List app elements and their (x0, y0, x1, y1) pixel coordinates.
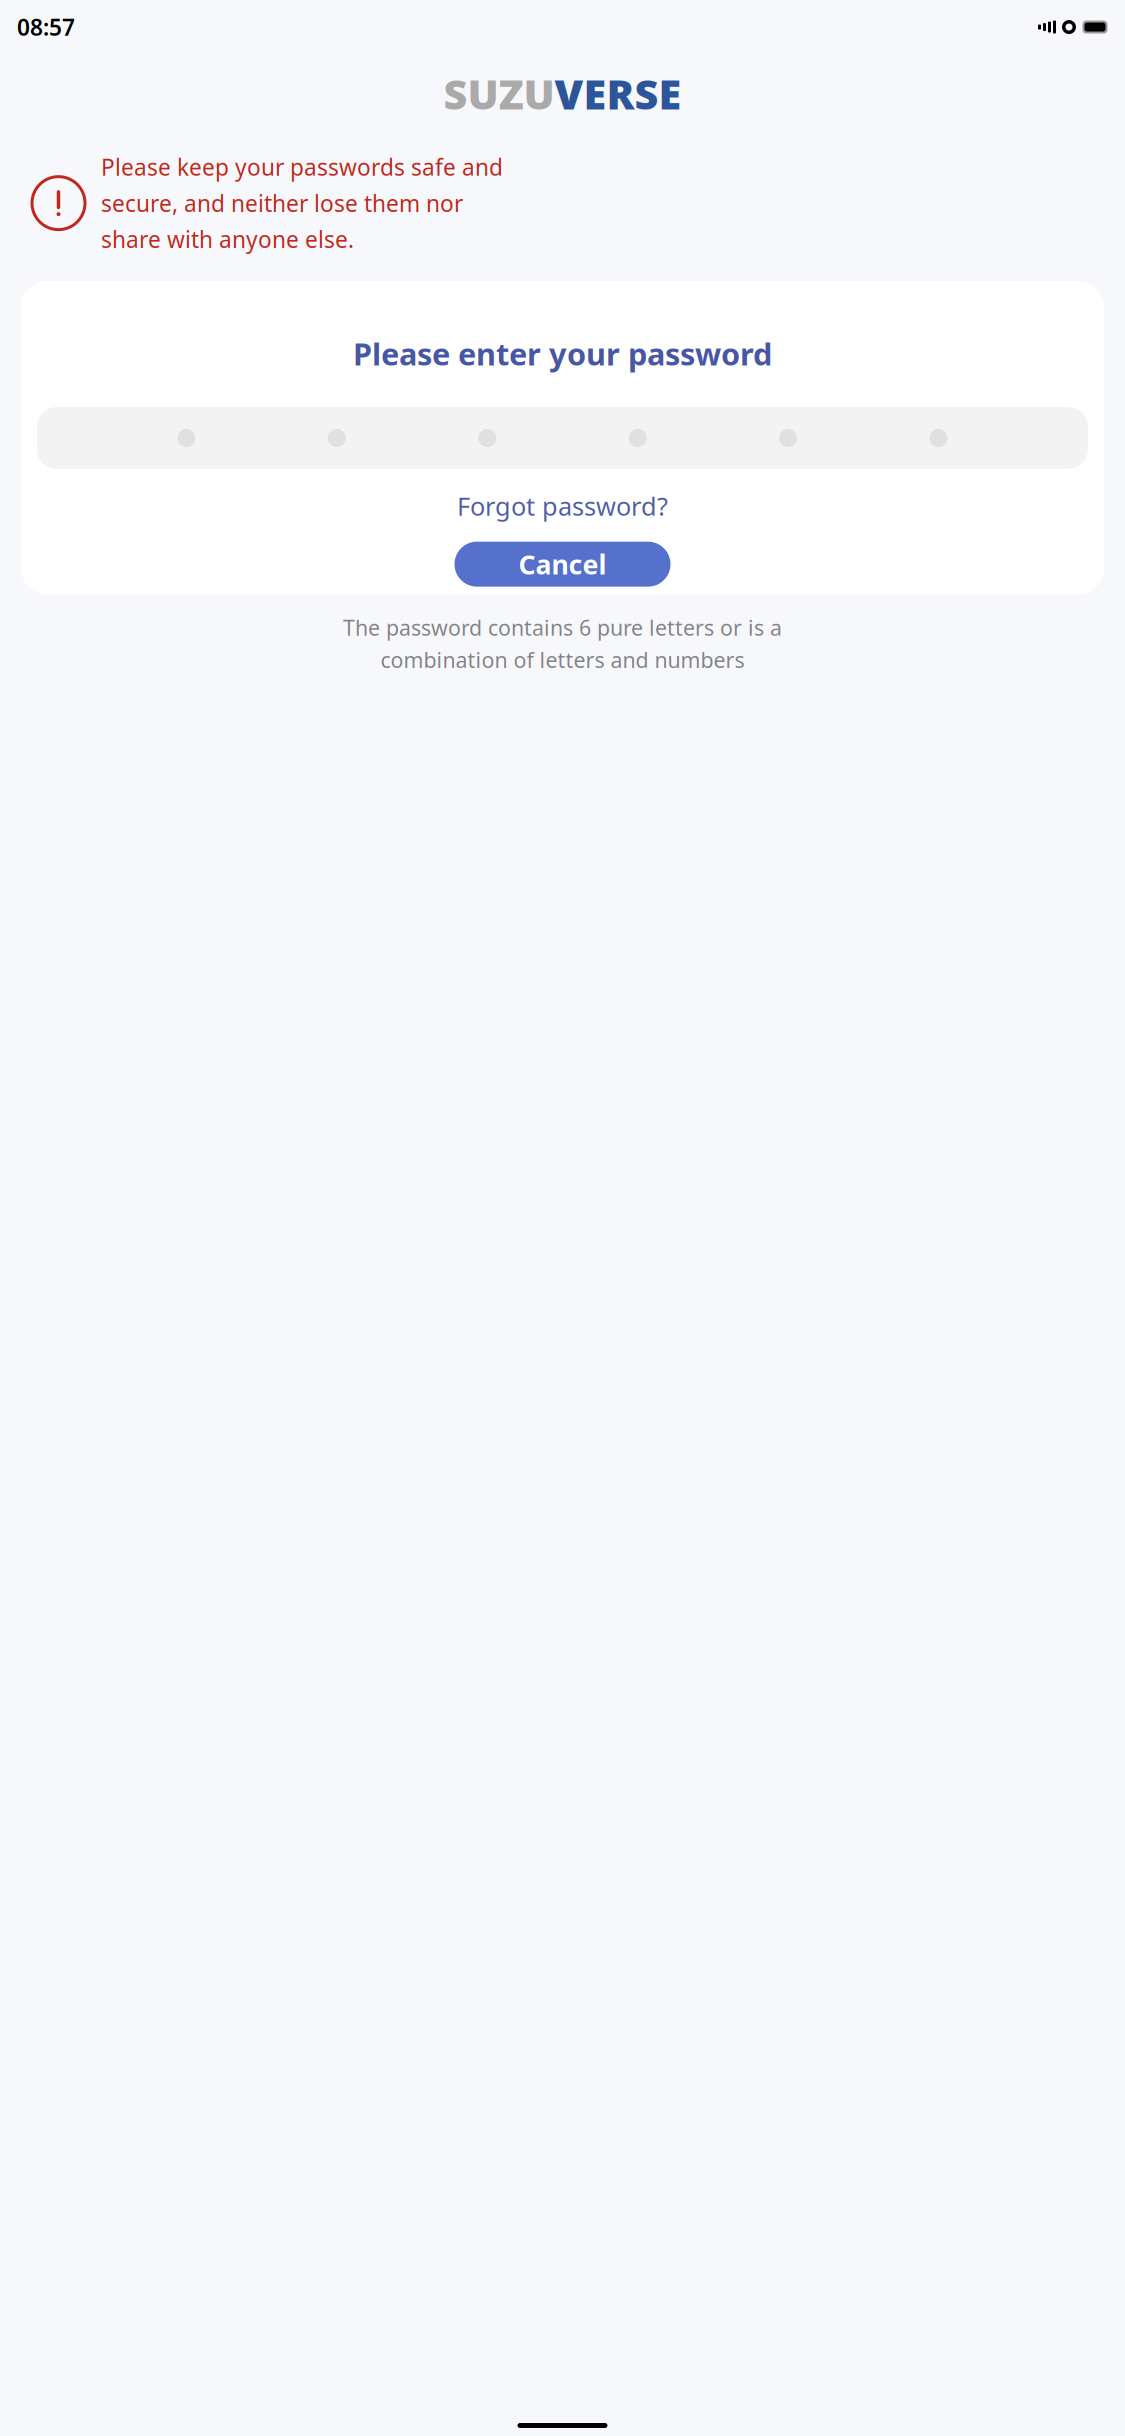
staticText: secure, and neither lose them nor (101, 188, 463, 218)
button[interactable]: Cancel (454, 542, 670, 587)
staticText: SUZU (443, 66, 554, 121)
staticText: VERSE (554, 66, 681, 121)
button[interactable]: Forgot password? (445, 482, 680, 530)
staticText: Forgot password? (457, 489, 668, 523)
staticText: Please keep your passwords safe and (101, 152, 503, 182)
staticText: The password contains 6 pure letters or … (343, 613, 782, 642)
staticText: Please enter your password (353, 333, 772, 374)
staticText: Cancel (518, 546, 606, 582)
staticText: combination of letters and numbers (380, 646, 744, 674)
staticText: share with anyone else. (101, 224, 354, 254)
staticText: 08:57 (17, 12, 75, 42)
